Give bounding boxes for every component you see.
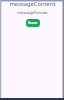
- staticText: Scan: [28, 20, 38, 26]
- staticText: messageFormat: [17, 10, 48, 15]
- staticText: messageContent: [9, 0, 56, 8]
- button[interactable]: Scan: [26, 19, 40, 27]
